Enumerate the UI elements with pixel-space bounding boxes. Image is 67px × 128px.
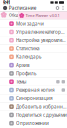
staticText: Добавить в избранное [16, 104, 67, 110]
button[interactable]: Поиск [54, 5, 60, 11]
button[interactable]: Синхронизация [0, 94, 67, 102]
staticText: Обед [9, 12, 18, 18]
staticText: Статистика [16, 45, 40, 52]
staticText: Управление категориями [16, 29, 67, 35]
button[interactable]: Управление категориями [0, 28, 67, 36]
button[interactable]: Календарь [0, 53, 67, 61]
button[interactable]: Настройка уведомлений [0, 36, 67, 44]
staticText: Архив [16, 62, 30, 68]
staticText: Синхронизация [16, 95, 53, 101]
button[interactable]: Темы [0, 78, 67, 86]
button[interactable]: Ещё [60, 5, 65, 11]
button[interactable]: Добавить в избранное [0, 102, 67, 111]
staticText: Резервная копия [16, 87, 55, 93]
staticText: Профиль [16, 70, 36, 77]
button[interactable]: Архив [0, 61, 67, 69]
staticText: О приложении [16, 120, 49, 126]
staticText: Time Planner v3.0.1 [25, 13, 59, 18]
staticText: Календарь [16, 54, 41, 60]
button[interactable]: Профиль [0, 69, 67, 78]
staticText: Мои задачи [16, 21, 44, 27]
staticText: Расписание [9, 5, 37, 11]
staticText: Настройка уведомлений [16, 37, 67, 43]
button[interactable]: Time Planner v3.0.1 [18, 11, 67, 19]
staticText: 9:41 [3, 0, 10, 5]
button[interactable]: Статистика [0, 44, 67, 53]
staticText: Поделиться с друзьями [16, 112, 67, 118]
staticText: Темы [16, 79, 26, 85]
button[interactable]: Профиль [1, 6, 9, 10]
button[interactable]: О приложении [0, 119, 67, 127]
button[interactable]: Поделиться с друзьями [0, 111, 67, 119]
button[interactable]: Мои задачи [0, 19, 67, 28]
button[interactable]: Резервная копия [0, 86, 67, 94]
